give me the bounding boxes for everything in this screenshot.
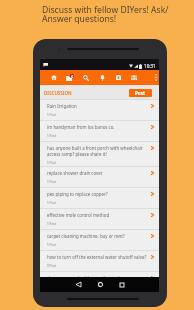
button[interactable]: Messages [63, 70, 77, 85]
staticText: 1 Post [47, 113, 56, 117]
button[interactable]: effective mole control method [40, 209, 159, 230]
staticText: 10:31 [144, 63, 156, 69]
staticText: 1 Post [47, 134, 56, 138]
staticText: effective mole control method [47, 212, 110, 218]
button[interactable]: Home [47, 70, 61, 85]
button[interactable]: More options [152, 70, 159, 85]
staticText: 1 Post [47, 222, 56, 226]
button[interactable]: Notifications [95, 70, 109, 85]
staticText: im handyman from los banos co. [47, 124, 115, 130]
staticText: pex piping to replace copper? [47, 191, 108, 197]
button[interactable]: Search [79, 70, 93, 85]
staticText: Post [135, 90, 146, 96]
button[interactable]: clean moss and mildew on the roof [40, 272, 159, 292]
button[interactable]: Post [129, 89, 152, 97]
button[interactable]: has anyone built a front porch with whee… [40, 142, 159, 167]
staticText: 0 Post [47, 264, 56, 268]
staticText: how to turn off the external water shuto… [47, 254, 147, 260]
button[interactable]: pex piping to replace copper? [40, 188, 159, 209]
staticText: 1 Post [47, 201, 56, 205]
staticText: replace shower drain cover [47, 170, 103, 176]
button[interactable]: Home [89, 277, 111, 292]
staticText: Rain Irrigation [47, 103, 77, 109]
button[interactable]: Pros [127, 70, 141, 85]
staticText: DISCUSSION [44, 90, 72, 96]
button[interactable]: Back [67, 277, 89, 292]
button[interactable]: Rain Irrigation [40, 100, 159, 121]
staticText: 1 Post [47, 180, 56, 184]
button[interactable]: replace shower drain cover [40, 167, 159, 188]
staticText: Discuss with fellow DIYers! Ask/ Answer … [42, 4, 169, 24]
button[interactable]: how to turn off the external water shuto… [40, 251, 159, 272]
button[interactable]: im handyman from los banos co. [40, 121, 159, 142]
staticText: 4 [71, 74, 73, 78]
button[interactable]: carpet cleaning machine, buy or rent? [40, 230, 159, 251]
staticText: carpet cleaning machine, buy or rent? [47, 233, 125, 239]
staticText: has anyone built a front porch with whee… [47, 145, 151, 157]
staticText: 1 Post [47, 243, 56, 247]
button[interactable]: Recent apps [111, 277, 133, 292]
staticText: clean moss and mildew on the roof [47, 275, 120, 281]
button[interactable]: Deals [111, 70, 125, 85]
staticText: 1 Post [47, 161, 56, 165]
